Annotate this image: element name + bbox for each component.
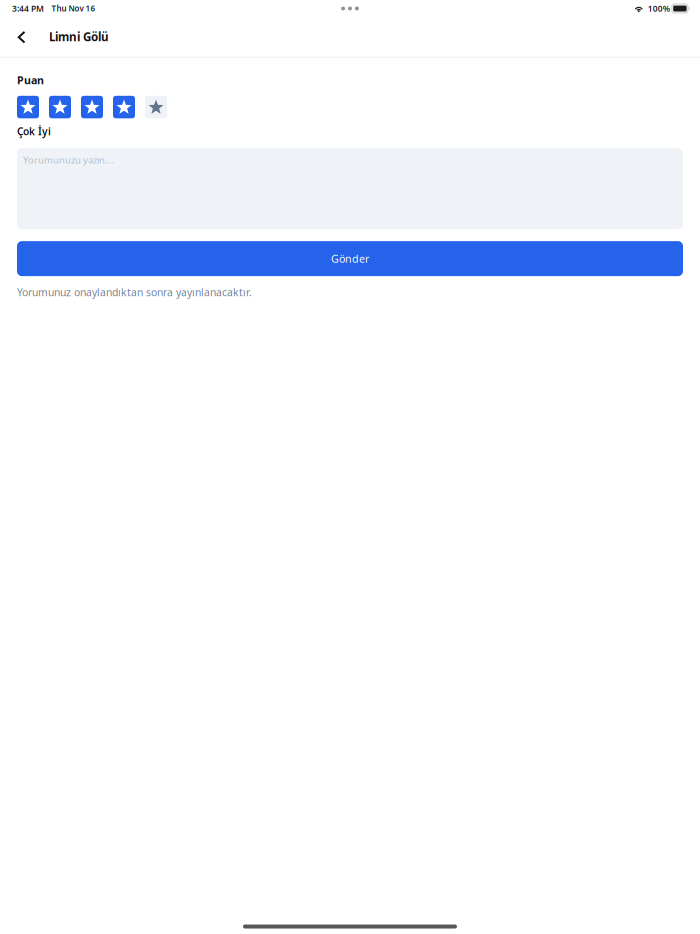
staticText: 3:44 PM [12, 3, 44, 14]
button[interactable]: Gönder [17, 241, 683, 276]
staticText: Yorumunuzu yazın... [23, 153, 114, 166]
staticText: 100% [648, 3, 670, 14]
staticText: Yorumunuz onaylandıktan sonra yayınlanac… [17, 285, 252, 299]
staticText: Puan [17, 73, 44, 87]
staticText: Thu Nov 16 [51, 3, 95, 14]
button[interactable]: Rate 2 stars [49, 96, 71, 118]
button[interactable]: Rate 3 stars [81, 96, 103, 118]
staticText: Gönder [331, 251, 369, 266]
button[interactable]: Back [0, 25, 41, 49]
staticText: Limni Gölü [49, 29, 109, 45]
button[interactable]: Rate 4 stars [113, 96, 135, 118]
button[interactable]: Rate 1 star [17, 96, 39, 118]
button[interactable]: Rate 5 stars [145, 96, 167, 118]
staticText: Çok İyi [17, 124, 51, 138]
